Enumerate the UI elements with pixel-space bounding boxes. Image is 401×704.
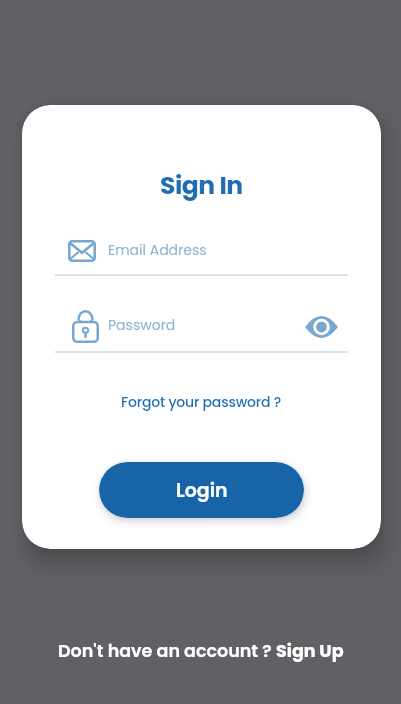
button[interactable]: [300, 311, 342, 343]
staticText: Don't have an account ?: [58, 639, 276, 664]
staticText: Sign In: [160, 168, 243, 203]
staticText: Email Address: [108, 240, 207, 260]
button[interactable]: Login: [99, 462, 304, 518]
button[interactable]: Forgot your password ?: [121, 392, 282, 412]
button[interactable]: Don't have an account ?: [58, 639, 344, 664]
staticText: Password: [108, 315, 176, 335]
staticText: Sign Up: [276, 639, 344, 664]
staticText: Login: [176, 477, 228, 504]
